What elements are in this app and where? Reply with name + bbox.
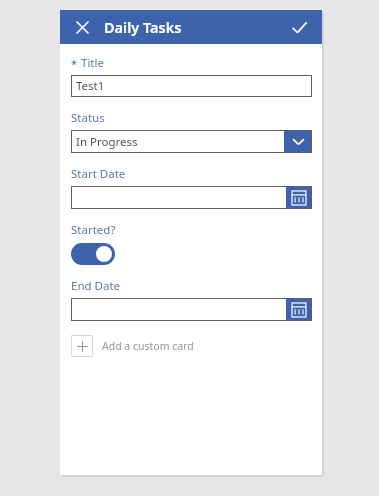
other: Pick a date: [286, 186, 312, 209]
other: Open dropdown: [284, 130, 312, 153]
button[interactable]: Started toggle: [71, 243, 115, 265]
button[interactable]: Submit: [288, 16, 310, 38]
staticText: End Date: [71, 278, 121, 294]
staticText: Add a custom card: [102, 339, 194, 353]
staticText: Title: [81, 55, 104, 71]
button[interactable]: Close: [72, 17, 92, 37]
other: Pick a date: [286, 298, 312, 321]
button[interactable]: Test1: [71, 75, 312, 97]
staticText: Status: [71, 110, 105, 126]
button[interactable]: In Progress: [71, 130, 312, 153]
button[interactable]: Add a custom card: [71, 335, 312, 357]
staticText: Started?: [71, 222, 116, 238]
button[interactable]: Pick a date: [71, 298, 312, 321]
staticText: *: [71, 56, 78, 71]
button[interactable]: Pick a date: [71, 186, 312, 209]
staticText: Test1: [76, 78, 105, 94]
staticText: Daily Tasks: [104, 17, 182, 37]
staticText: In Progress: [76, 134, 138, 150]
staticText: Start Date: [71, 166, 126, 182]
